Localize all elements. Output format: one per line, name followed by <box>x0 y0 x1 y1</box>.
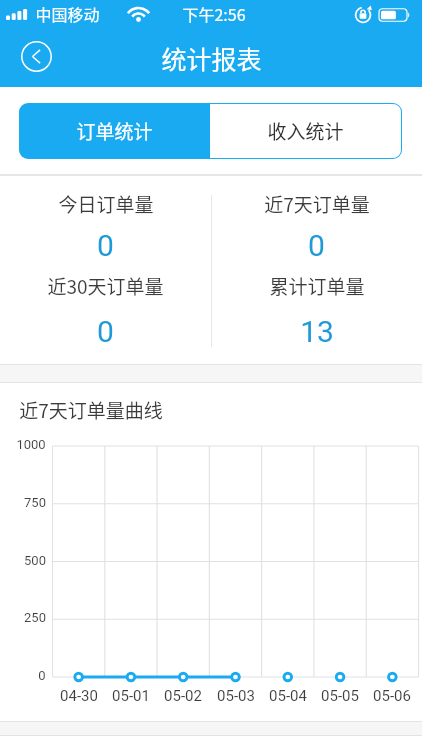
staticText: 05-03 <box>217 687 255 705</box>
staticText: 750 <box>24 495 46 510</box>
staticText: 近30天订单量 <box>47 272 164 300</box>
staticText: 订单统计 <box>76 117 153 145</box>
staticText: 0 <box>97 314 114 349</box>
staticText: 近7天订单量曲线 <box>19 396 163 424</box>
staticText: 500 <box>24 553 46 568</box>
button[interactable]: 收入统计 <box>210 104 401 158</box>
staticText: 05-02 <box>164 687 202 705</box>
staticText: 04-30 <box>60 687 98 705</box>
staticText: 05-04 <box>269 687 307 705</box>
staticText: 1000 <box>16 437 46 452</box>
staticText: 250 <box>24 610 46 625</box>
staticText: 05-01 <box>112 687 150 705</box>
staticText: 13 <box>300 314 334 349</box>
staticText: 收入统计 <box>267 117 344 145</box>
staticText: 下午2:56 <box>182 2 246 25</box>
staticText: 统计报表 <box>161 40 262 76</box>
staticText: 近7天订单量 <box>264 190 370 218</box>
staticText: 0 <box>308 228 325 263</box>
button[interactable]: 订单统计 <box>19 103 210 159</box>
staticText: 05-06 <box>373 687 411 705</box>
staticText: 05-05 <box>321 687 359 705</box>
staticText: 累计订单量 <box>269 272 365 300</box>
staticText: 中国移动 <box>35 2 100 25</box>
staticText: 今日订单量 <box>58 190 154 218</box>
staticText: 0 <box>38 668 46 683</box>
button[interactable] <box>21 41 52 72</box>
staticText: 0 <box>97 228 114 263</box>
